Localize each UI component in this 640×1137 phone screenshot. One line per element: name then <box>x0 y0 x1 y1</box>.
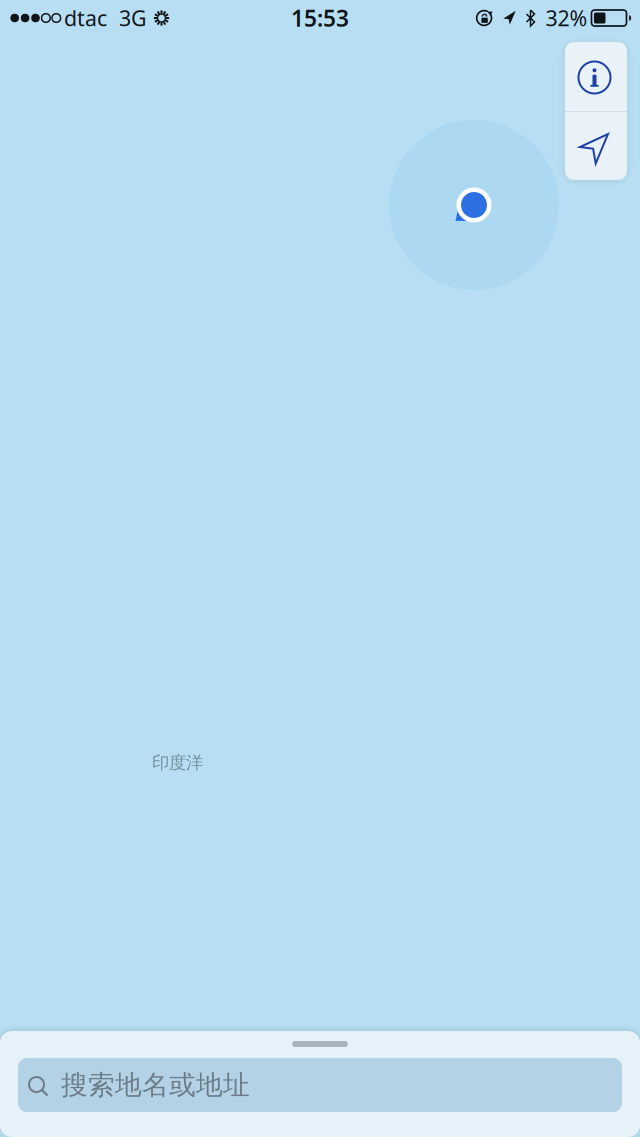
staticText: 15:53 <box>291 3 349 33</box>
button[interactable]: Info <box>565 42 627 111</box>
staticText: 搜索地名或地址 <box>61 1069 250 1101</box>
staticText: dtac <box>64 4 107 32</box>
staticText: 32% <box>545 4 587 32</box>
staticText: 3G <box>119 4 147 32</box>
button[interactable]: Current Location <box>565 112 627 180</box>
button[interactable]: 搜索地名或地址 <box>18 1058 622 1112</box>
staticText: 印度洋 <box>152 752 203 773</box>
